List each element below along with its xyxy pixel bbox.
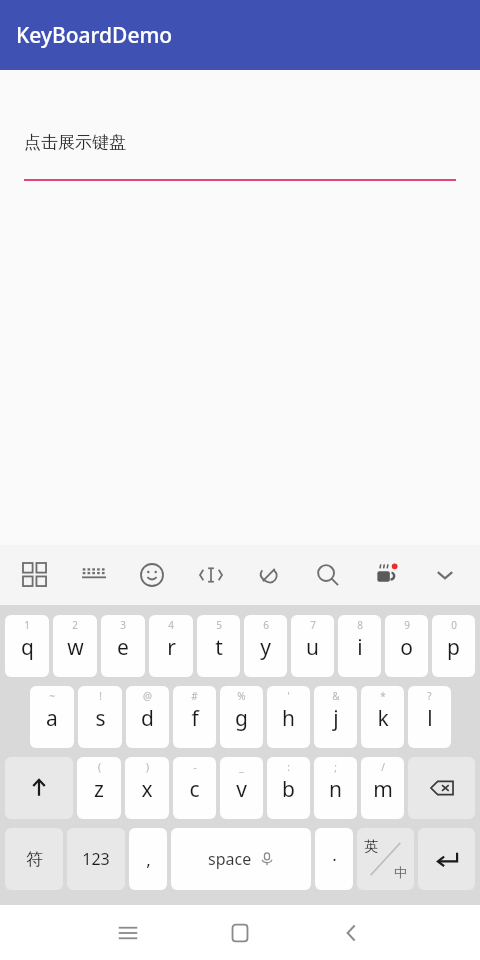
button[interactable]: -: [173, 757, 216, 819]
staticText: k: [377, 704, 389, 733]
staticText: 点击展示键盘: [24, 132, 126, 153]
staticText: @: [143, 689, 152, 703]
staticText: j: [333, 704, 339, 733]
staticText: 8: [357, 618, 363, 632]
button[interactable]: &: [314, 686, 357, 748]
staticText: s: [95, 704, 106, 733]
button[interactable]: 3: [101, 615, 145, 677]
staticText: x: [141, 775, 153, 804]
staticText: f: [191, 704, 199, 733]
staticText: q: [21, 633, 34, 662]
staticText: n: [329, 775, 342, 804]
button[interactable]: Enter: [418, 828, 475, 890]
button[interactable]: ?: [408, 686, 451, 748]
button[interactable]: ): [125, 757, 169, 819]
staticText: m: [373, 775, 393, 804]
staticText: g: [235, 704, 248, 733]
staticText: 6: [263, 618, 269, 632]
staticText: ?: [427, 689, 432, 703]
button[interactable]: 123: [67, 828, 125, 890]
staticText: c: [189, 775, 200, 804]
staticText: z: [94, 775, 104, 804]
staticText: b: [282, 775, 295, 804]
button[interactable]: 5: [197, 615, 240, 677]
button[interactable]: /: [361, 757, 404, 819]
button[interactable]: 7: [291, 615, 334, 677]
staticText: ~: [49, 689, 55, 703]
staticText: %: [237, 689, 246, 703]
staticText: &: [332, 689, 340, 703]
staticText: h: [282, 704, 295, 733]
staticText: KeyBoardDemo: [16, 21, 173, 50]
button[interactable]: 符: [5, 828, 63, 890]
button[interactable]: (: [77, 757, 121, 819]
button[interactable]: !: [78, 686, 122, 748]
staticText: space: [208, 848, 252, 870]
staticText: ): [146, 760, 149, 774]
button[interactable]: space: [171, 828, 311, 890]
button[interactable]: ·: [315, 828, 353, 890]
staticText: 中: [394, 864, 407, 880]
button[interactable]: Apps: [18, 558, 52, 592]
staticText: ': [287, 689, 290, 703]
staticText: e: [117, 633, 129, 662]
staticText: 符: [26, 849, 43, 870]
button[interactable]: 0: [432, 615, 475, 677]
button[interactable]: @: [126, 686, 169, 748]
staticText: ;: [334, 760, 337, 774]
button[interactable]: 9: [385, 615, 428, 677]
button[interactable]: Recent apps: [106, 911, 150, 955]
button[interactable]: Theme: [369, 558, 403, 592]
button[interactable]: Text edit: [194, 558, 228, 592]
button[interactable]: Switch language: [357, 828, 414, 890]
staticText: w: [67, 633, 84, 662]
staticText: t: [215, 633, 223, 662]
staticText: o: [400, 633, 413, 662]
button[interactable]: 1: [5, 615, 49, 677]
staticText: /: [381, 760, 385, 774]
staticText: ·: [332, 848, 337, 871]
staticText: v: [236, 775, 247, 804]
button[interactable]: ,: [129, 828, 167, 890]
staticText: d: [141, 704, 154, 733]
staticText: 1: [24, 618, 30, 632]
staticText: a: [46, 704, 58, 733]
staticText: -: [193, 760, 197, 774]
staticText: _: [239, 760, 244, 774]
button[interactable]: 6: [244, 615, 287, 677]
button[interactable]: 2: [53, 615, 97, 677]
button[interactable]: Search: [311, 558, 345, 592]
staticText: 9: [404, 618, 410, 632]
button[interactable]: _: [220, 757, 263, 819]
button[interactable]: ~: [30, 686, 74, 748]
button[interactable]: Backspace: [408, 757, 475, 819]
button[interactable]: *: [361, 686, 404, 748]
staticText: 5: [216, 618, 222, 632]
staticText: p: [447, 633, 460, 662]
staticText: i: [357, 633, 363, 662]
button[interactable]: ': [267, 686, 310, 748]
button[interactable]: Back: [330, 911, 374, 955]
staticText: *: [380, 689, 386, 703]
button[interactable]: %: [220, 686, 263, 748]
staticText: 英: [364, 838, 378, 856]
button[interactable]: 4: [149, 615, 193, 677]
button[interactable]: Keyboard layout: [77, 558, 111, 592]
button[interactable]: Shift: [5, 757, 73, 819]
staticText: 2: [72, 618, 78, 632]
button[interactable]: :: [267, 757, 310, 819]
button[interactable]: Hide keyboard: [428, 558, 462, 592]
staticText: l: [427, 704, 433, 733]
staticText: 0: [451, 618, 457, 632]
staticText: 123: [82, 848, 110, 870]
button[interactable]: Emoji: [135, 558, 169, 592]
button[interactable]: ;: [314, 757, 357, 819]
button[interactable]: 8: [338, 615, 381, 677]
button[interactable]: #: [173, 686, 216, 748]
button[interactable]: Home: [218, 911, 262, 955]
staticText: :: [287, 760, 290, 774]
staticText: r: [167, 633, 176, 662]
button[interactable]: 点击展示键盘: [24, 132, 456, 181]
staticText: u: [306, 633, 319, 662]
button[interactable]: Clipboard: [252, 558, 286, 592]
